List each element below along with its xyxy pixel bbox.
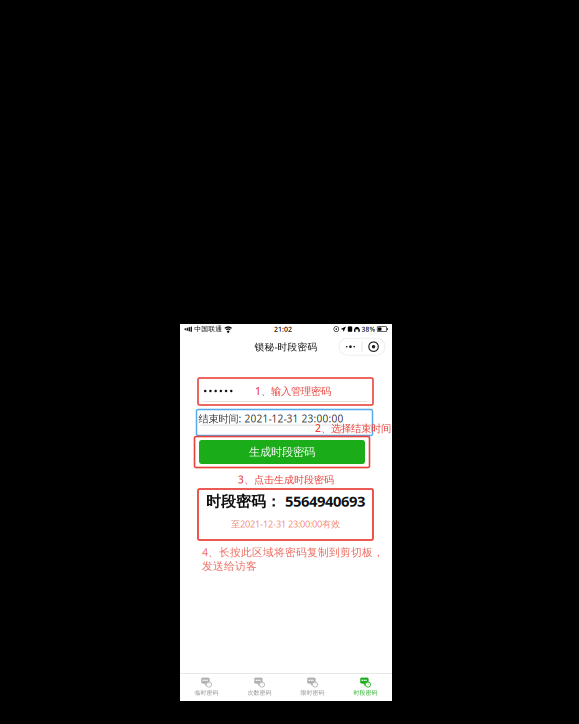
staticText: 时段密码： 5564940693 bbox=[206, 491, 365, 511]
staticText: 次数密码 bbox=[247, 689, 271, 696]
staticText: 生成时段密码 bbox=[249, 445, 315, 459]
staticText: 21:02 bbox=[274, 324, 292, 334]
staticText: 38% bbox=[362, 325, 376, 334]
button[interactable]: 时段密码 bbox=[339, 674, 392, 700]
staticText: 2、选择结束时间 bbox=[315, 421, 391, 435]
staticText: 限时密码 bbox=[300, 689, 324, 696]
staticText: 4、长按此区域将密码复制到剪切板，发送给访客 bbox=[202, 545, 384, 573]
button[interactable]: 限时密码 bbox=[286, 674, 339, 700]
staticText: 临时密码 bbox=[194, 689, 218, 696]
staticText: 中国联通 bbox=[194, 325, 222, 333]
button[interactable]: 临时密码 bbox=[180, 674, 233, 700]
button[interactable]: 时段密码： 5564940693 bbox=[200, 491, 371, 538]
staticText: 锁秘-时段密码 bbox=[254, 340, 317, 353]
button[interactable]: 次数密码 bbox=[233, 674, 286, 700]
button[interactable]: 1、输入管理密码 bbox=[200, 380, 371, 403]
staticText: 时段密码 bbox=[353, 689, 377, 696]
button[interactable]: More options bbox=[339, 338, 385, 355]
staticText: 至2021-12-31 23:00:00有效 bbox=[231, 518, 340, 530]
staticText: 结束时间: 2021-12-31 23:00:00 bbox=[198, 412, 343, 425]
staticText: 1、输入管理密码 bbox=[255, 384, 331, 398]
button[interactable]: 生成时段密码 bbox=[199, 440, 365, 464]
staticText: 3、点击生成时段密码 bbox=[238, 473, 334, 486]
button[interactable]: 结束时间: 2021-12-31 23:00:00 bbox=[198, 411, 370, 426]
